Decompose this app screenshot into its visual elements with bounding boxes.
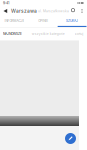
- button[interactable]: Szukaj: [69, 8, 78, 13]
- button[interactable]: Więcej: [78, 8, 86, 13]
- button[interactable]: SZUKAJ: [58, 16, 86, 27]
- staticText: ul. Marszałkowska: [37, 9, 69, 13]
- staticText: sortuj: [74, 32, 83, 36]
- button[interactable]: INFORMACJE: [0, 16, 29, 27]
- staticText: Warszawa: [11, 8, 37, 14]
- staticText: OPINIE: [38, 19, 48, 23]
- button[interactable]: Napisz: [65, 133, 76, 144]
- staticText: NAJNOWSZE: [3, 32, 22, 36]
- staticText: SZUKAJ: [66, 19, 78, 23]
- staticText: INFORMACJE: [4, 19, 24, 23]
- button[interactable]: Wstecz: [0, 9, 11, 13]
- button[interactable]: OPINIE: [29, 16, 58, 27]
- staticText: wszystkie kategorie: [32, 32, 65, 36]
- staticText: 9:41: [3, 1, 9, 5]
